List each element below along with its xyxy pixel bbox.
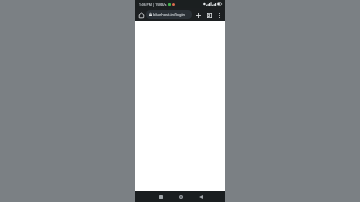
button[interactable]: New tab [194,11,202,19]
button[interactable]: Switch tabs [205,11,213,19]
button[interactable]: More options [215,11,223,19]
button[interactable]: Back [195,191,206,202]
staticText: 2 [208,13,211,18]
button[interactable]: bluehost.in/login [146,10,192,19]
button[interactable]: Recent apps [155,191,166,202]
button[interactable]: Home [175,191,186,202]
staticText: 1:06 PM | 15KB/s [139,2,167,7]
button[interactable]: Home [137,11,145,19]
staticText: bluehost.in/login [153,12,185,17]
